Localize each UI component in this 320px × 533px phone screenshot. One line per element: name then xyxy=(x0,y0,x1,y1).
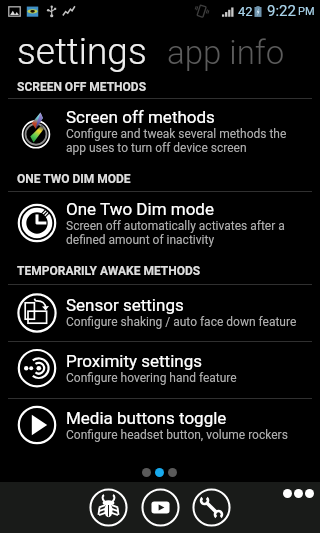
staticText: ONE TWO DIM MODE xyxy=(17,172,131,186)
staticText: 42 xyxy=(238,4,253,19)
staticText: app info xyxy=(167,33,285,72)
staticText: settings xyxy=(17,30,147,73)
button[interactable] xyxy=(0,283,320,335)
staticText: Configure headset button, volume rockers xyxy=(66,428,288,442)
staticText: Configure hovering hand feature xyxy=(66,371,237,385)
staticText: TEMPORARILY AWAKE METHODS xyxy=(17,264,201,278)
button[interactable] xyxy=(0,95,320,147)
button[interactable] xyxy=(0,339,320,391)
staticText: Screen off automatically activates after… xyxy=(66,219,285,247)
button[interactable] xyxy=(0,396,320,448)
staticText: Sensor settings xyxy=(66,295,184,315)
staticText: Proximity settings xyxy=(66,351,203,371)
staticText: Configure shaking / auto face down featu… xyxy=(66,315,297,329)
staticText: 9:22 xyxy=(267,2,296,20)
staticText: One Two Dim mode xyxy=(66,199,214,219)
staticText: Screen off methods xyxy=(66,107,215,127)
staticText: Configure and tweak several methods the … xyxy=(66,127,287,155)
staticText: PM xyxy=(298,5,315,18)
button[interactable]: Bug report xyxy=(88,487,129,528)
button[interactable]: Tools xyxy=(191,487,232,528)
button[interactable]: app info xyxy=(167,33,285,72)
button[interactable] xyxy=(0,187,320,239)
button[interactable]: More options xyxy=(276,482,320,504)
staticText: Media buttons toggle xyxy=(66,408,227,428)
button[interactable]: Video xyxy=(140,487,181,528)
button[interactable]: settings xyxy=(17,30,147,73)
staticText: SCREEN OFF METHODS xyxy=(17,80,147,94)
